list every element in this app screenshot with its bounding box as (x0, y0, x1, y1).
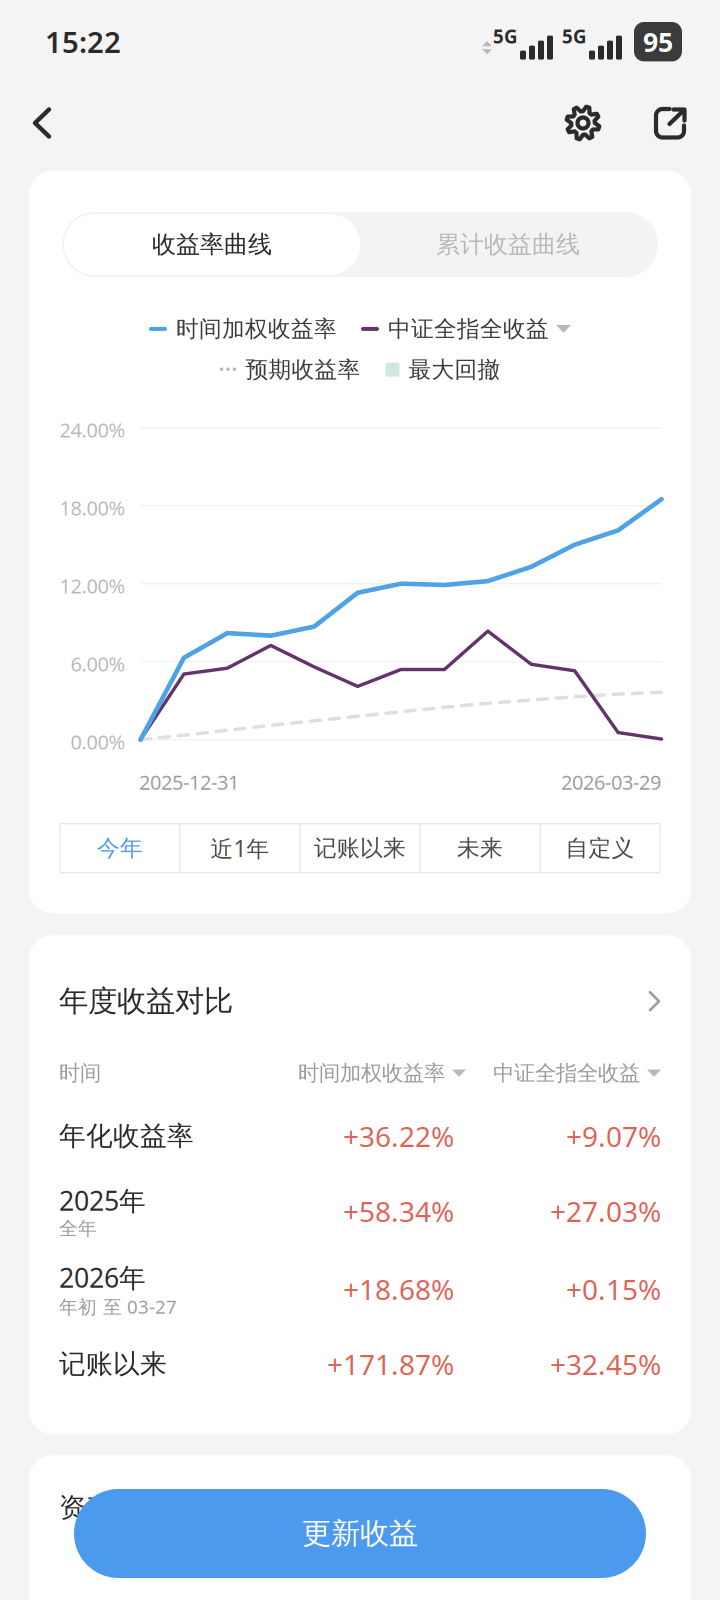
staticText: 2025年 (59, 1183, 146, 1218)
staticText: 收益率曲线 (152, 230, 272, 259)
button[interactable]: 累计收益曲线 (360, 214, 656, 275)
staticText: 记账以来 (314, 834, 406, 862)
staticText: 自定义 (565, 834, 634, 862)
button[interactable]: Share (642, 95, 698, 151)
button[interactable]: 未来 (420, 823, 540, 873)
staticText: 时间 (59, 1060, 101, 1086)
staticText: +27.03% (550, 1193, 661, 1230)
staticText: 全年 (59, 1217, 97, 1240)
button[interactable]: 收益率曲线 (64, 214, 360, 275)
button[interactable]: Back (16, 95, 68, 151)
staticText: +32.45% (550, 1346, 661, 1383)
staticText: 最大回撤 (408, 356, 500, 384)
button[interactable]: 记账以来 (300, 823, 420, 873)
staticText: +58.34% (343, 1193, 454, 1230)
staticText: 更新收益 (302, 1515, 418, 1551)
staticText: 2026年 (59, 1260, 146, 1295)
staticText: +18.68% (343, 1271, 454, 1308)
staticText: +36.22% (343, 1118, 454, 1155)
staticText: 95 (643, 24, 673, 59)
staticText: 2025-12-31 (139, 769, 239, 795)
staticText: 近1年 (210, 833, 269, 863)
staticText: +0.15% (566, 1271, 661, 1308)
staticText: 年度收益对比 (59, 983, 233, 1019)
staticText: 24.00% (59, 416, 125, 443)
staticText: 15:22 (45, 22, 121, 61)
staticText: 12.00% (59, 572, 125, 599)
staticText: 年初 至 03-27 (59, 1294, 177, 1319)
staticText: 未来 (457, 834, 503, 862)
button[interactable]: 自定义 (540, 823, 660, 873)
button[interactable]: 今年 (60, 823, 180, 873)
staticText: 中证全指全收益 (493, 1060, 640, 1086)
staticText: 累计收益曲线 (436, 230, 580, 259)
staticText: 2026-03-29 (561, 769, 661, 795)
staticText: 预期收益率 (245, 356, 360, 384)
button[interactable]: 近1年 (180, 823, 300, 873)
button[interactable]: 年度收益对比 (29, 935, 691, 1023)
staticText: 记账以来 (59, 1348, 167, 1381)
staticText: 18.00% (59, 494, 125, 521)
staticText: 年化收益率 (59, 1120, 194, 1153)
button[interactable]: Settings (555, 95, 611, 151)
staticText: 5G (493, 24, 518, 49)
staticText: 中证全指全收益 (388, 315, 549, 343)
staticText: 5G (562, 24, 587, 49)
staticText: 6.00% (70, 650, 125, 677)
staticText: 资产 (59, 1491, 113, 1524)
staticText: 时间加权收益率 (298, 1060, 445, 1086)
staticText: 时间加权收益率 (176, 315, 337, 343)
button[interactable]: 更新收益 (74, 1489, 646, 1578)
staticText: +171.87% (327, 1346, 454, 1383)
staticText: 0.00% (70, 728, 125, 755)
staticText: 今年 (97, 834, 143, 862)
staticText: +9.07% (566, 1118, 661, 1155)
